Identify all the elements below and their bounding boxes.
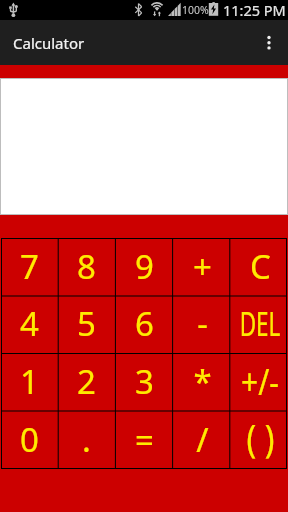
button[interactable]: 4 <box>0 295 57 352</box>
button[interactable]: 3 <box>114 352 172 410</box>
button[interactable]: = <box>114 410 172 468</box>
staticText: = <box>135 417 154 462</box>
button[interactable]: 1 <box>0 352 57 410</box>
staticText: C <box>250 244 271 289</box>
staticText: 2 <box>77 359 96 404</box>
staticText: * <box>193 359 212 404</box>
staticText: 100% <box>182 3 209 17</box>
button[interactable]: DEL <box>230 295 288 352</box>
staticText: 9 <box>135 244 154 289</box>
staticText: / <box>196 417 209 462</box>
staticText: 11:25 PM <box>223 0 286 20</box>
staticText: 1 <box>20 359 39 404</box>
staticText: Calculator <box>13 33 85 53</box>
staticText: +/- <box>241 357 279 406</box>
staticText: 3 <box>135 359 154 404</box>
button[interactable]: More options <box>250 20 288 65</box>
button[interactable]: 6 <box>114 295 172 352</box>
button[interactable]: * <box>172 352 230 410</box>
staticText: 5 <box>77 301 96 346</box>
button[interactable]: 5 <box>57 295 114 352</box>
staticText: - <box>197 301 208 346</box>
button[interactable]: 0 <box>0 410 57 468</box>
staticText: 6 <box>135 301 154 346</box>
button[interactable]: . <box>57 410 114 468</box>
staticText: 0 <box>20 417 39 462</box>
staticText: 4 <box>20 301 39 346</box>
staticText: . <box>82 417 91 462</box>
button[interactable]: + <box>172 238 230 295</box>
button[interactable]: C <box>230 238 288 295</box>
staticText: 8 <box>77 244 96 289</box>
staticText: DEL <box>240 301 280 346</box>
button[interactable]: - <box>172 295 230 352</box>
button[interactable]: ( ) <box>230 410 288 468</box>
button[interactable]: 7 <box>0 238 57 295</box>
staticText: ( ) <box>246 411 274 463</box>
staticText: + <box>193 244 212 289</box>
button[interactable]: 8 <box>57 238 114 295</box>
button[interactable]: 9 <box>114 238 172 295</box>
staticText: 7 <box>20 244 39 289</box>
button[interactable]: +/- <box>230 352 288 410</box>
button[interactable]: 2 <box>57 352 114 410</box>
button[interactable]: / <box>172 410 230 468</box>
